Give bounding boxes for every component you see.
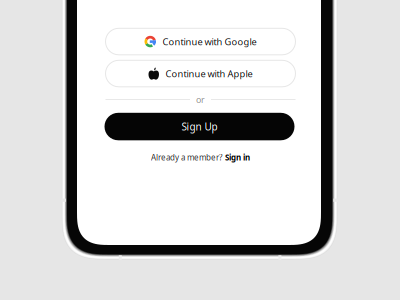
staticText: Already a member?	[151, 152, 222, 163]
staticText: Sign Up	[181, 120, 217, 133]
staticText: Continue with Google	[162, 35, 256, 48]
staticText: Continue with Apple	[165, 67, 252, 80]
button[interactable]: Continue with Apple	[105, 60, 295, 87]
button[interactable]: Continue with Google	[105, 28, 295, 55]
button[interactable]: Already a member?	[105, 150, 295, 164]
button[interactable]: Sign Up	[104, 113, 294, 140]
staticText: or	[196, 93, 205, 105]
staticText: Sign in	[225, 152, 250, 163]
